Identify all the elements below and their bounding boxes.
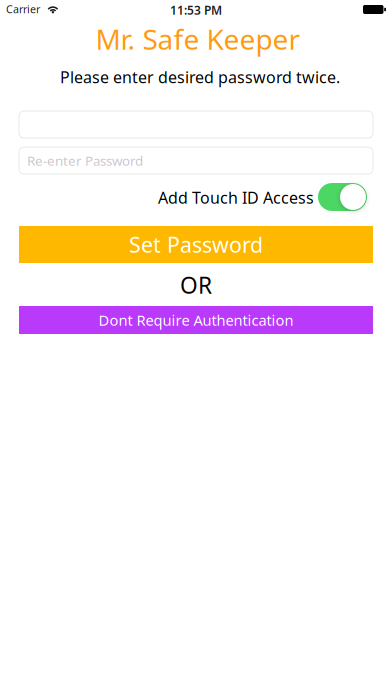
- staticText: OR: [180, 270, 212, 300]
- staticText: Mr. Safe Keeper: [95, 20, 300, 58]
- staticText: Carrier: [6, 2, 40, 16]
- staticText: Please enter desired password twice.: [60, 66, 340, 88]
- button[interactable]: Password: [19, 111, 373, 138]
- staticText: 11:53 PM: [170, 2, 222, 18]
- staticText: Set Password: [129, 230, 263, 259]
- staticText: Dont Require Authentication: [98, 310, 293, 330]
- button[interactable]: Add Touch ID Access: [318, 183, 367, 211]
- staticText: Re-enter Password: [27, 152, 143, 169]
- button[interactable]: Set Password: [19, 226, 373, 263]
- button[interactable]: Dont Require Authentication: [19, 306, 373, 334]
- staticText: Add Touch ID Access: [158, 187, 314, 208]
- button[interactable]: Re-enter Password: [19, 147, 373, 174]
